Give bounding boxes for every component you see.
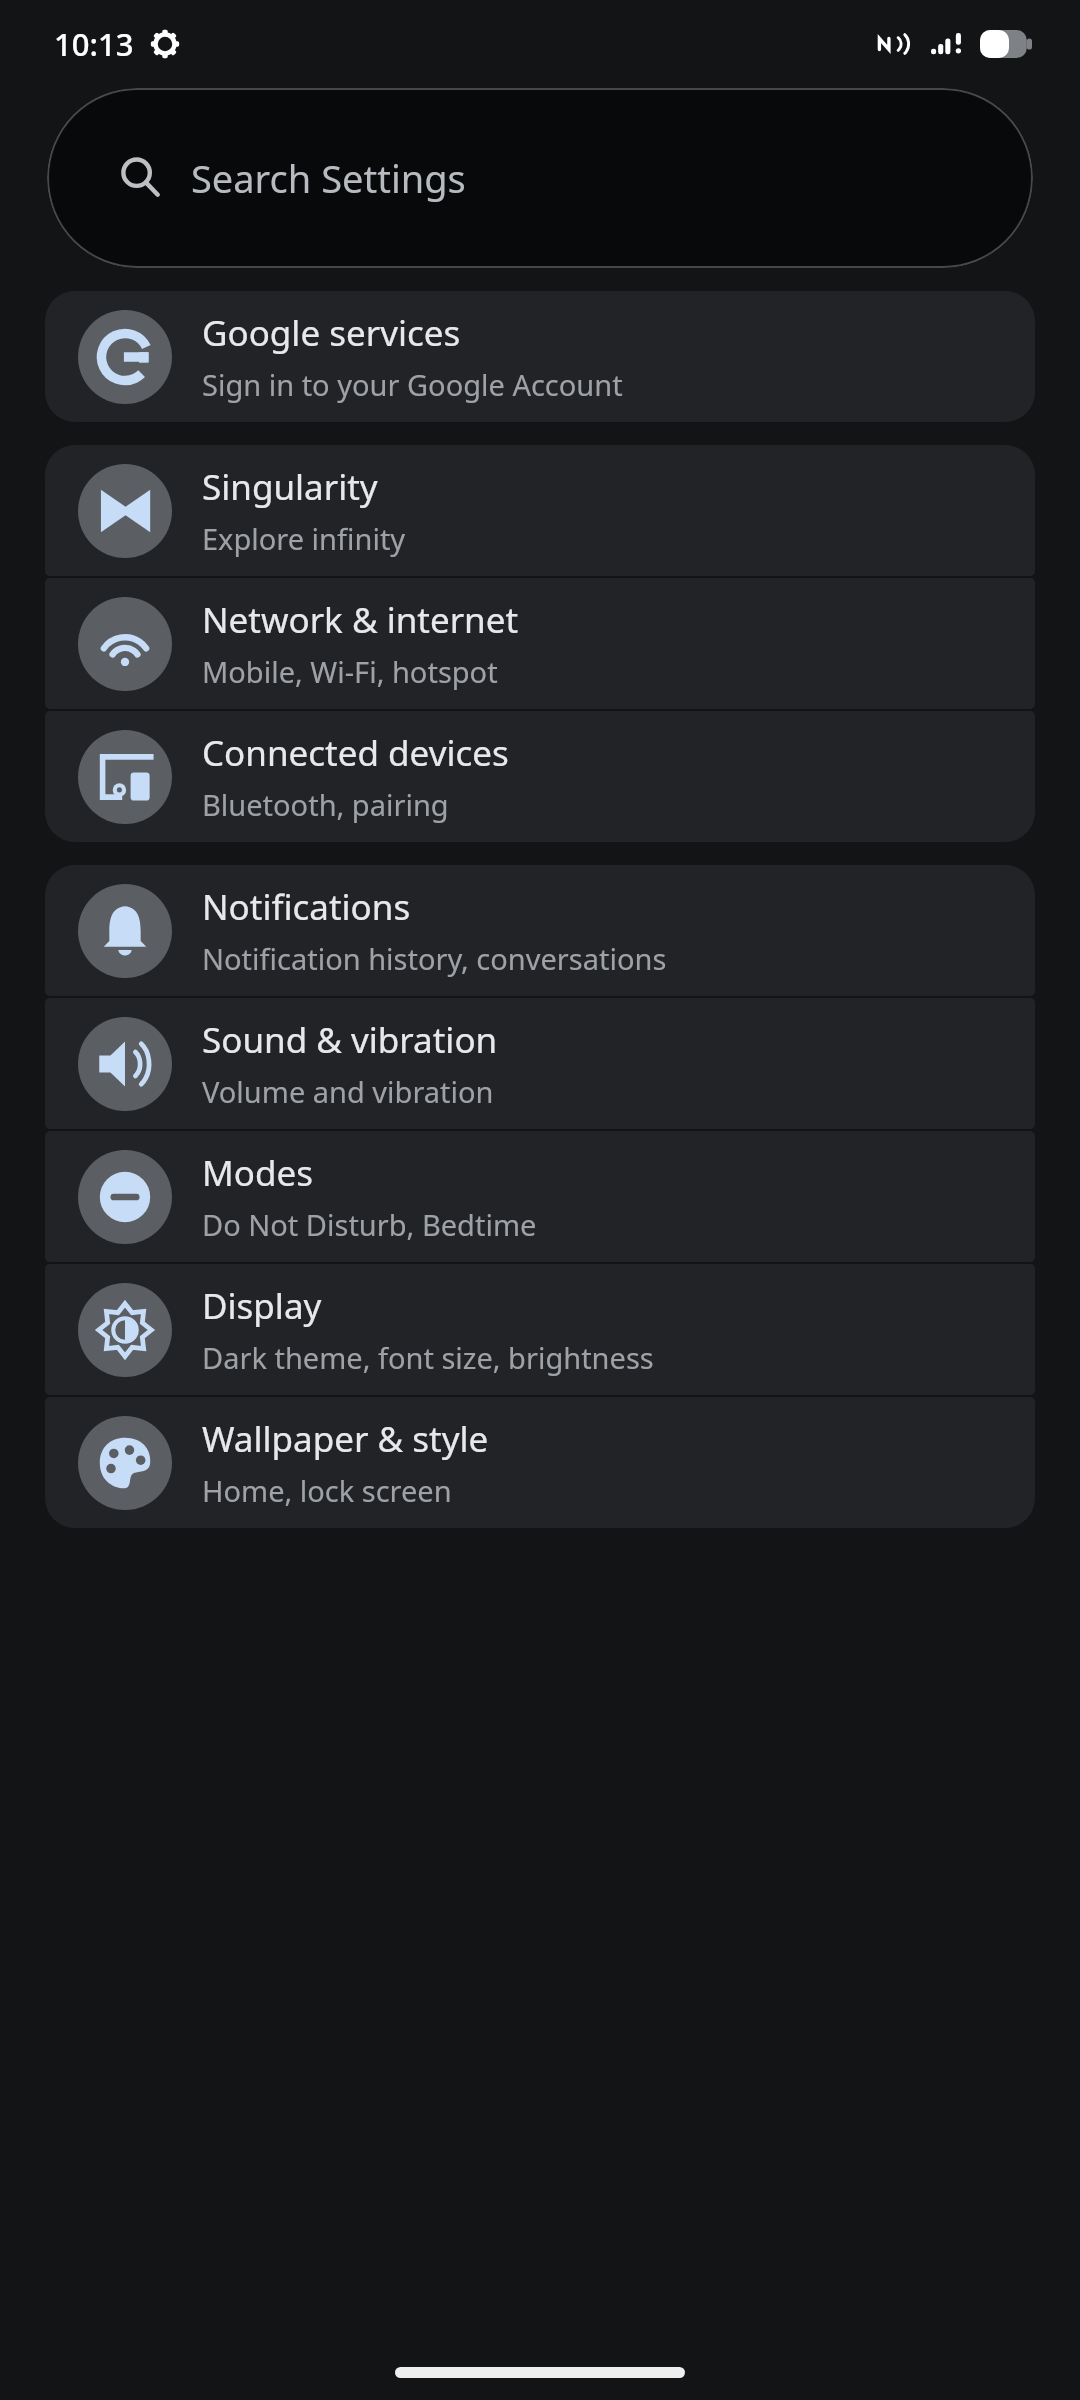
button[interactable]: Sound and vibration xyxy=(45,998,1035,1129)
staticText: Dark theme, font size, brightness xyxy=(202,1338,654,1377)
staticText: Search Settings xyxy=(191,152,466,204)
button[interactable]: Notifications xyxy=(45,865,1035,996)
staticText: Display xyxy=(202,1282,322,1330)
staticText: Mobile, Wi-Fi, hotspot xyxy=(202,652,498,691)
other: Google xyxy=(97,329,153,385)
staticText: Wallpaper & style xyxy=(202,1415,489,1463)
staticText: Sign in to your Google Account xyxy=(202,365,623,404)
staticText: Modes xyxy=(202,1149,313,1197)
button[interactable]: Wallpaper and style xyxy=(45,1397,1035,1528)
staticText: Notification history, conversations xyxy=(202,939,667,978)
staticText: Network & internet xyxy=(202,596,519,644)
button[interactable]: Connected devices xyxy=(45,711,1035,842)
other: Display xyxy=(97,1302,153,1358)
other: Wallpaper and style xyxy=(97,1435,153,1491)
other: Sound and vibration xyxy=(97,1036,153,1092)
staticText: Volume and vibration xyxy=(202,1072,494,1111)
button[interactable]: Network and internet xyxy=(45,578,1035,709)
other: Network and internet xyxy=(97,616,153,672)
staticText: 10:13 xyxy=(54,23,134,65)
staticText: Singularity xyxy=(202,463,378,511)
other: Notifications xyxy=(97,903,153,959)
staticText: Explore infinity xyxy=(202,519,406,558)
staticText: Bluetooth, pairing xyxy=(202,785,449,824)
other: Modes xyxy=(97,1169,153,1225)
staticText: Do Not Disturb, Bedtime xyxy=(202,1205,537,1244)
button[interactable]: Display xyxy=(45,1264,1035,1395)
staticText: Notifications xyxy=(202,883,411,931)
staticText: Home, lock screen xyxy=(202,1471,452,1510)
staticText: Sound & vibration xyxy=(202,1016,498,1064)
button[interactable]: Singularity xyxy=(45,445,1035,576)
button[interactable]: Search Settings xyxy=(47,88,1033,268)
other: Connected devices xyxy=(97,749,153,805)
other: Singularity xyxy=(97,483,153,539)
staticText: Google services xyxy=(202,309,461,357)
staticText: Connected devices xyxy=(202,729,509,777)
button[interactable]: Google xyxy=(45,291,1035,422)
button[interactable]: Modes xyxy=(45,1131,1035,1262)
